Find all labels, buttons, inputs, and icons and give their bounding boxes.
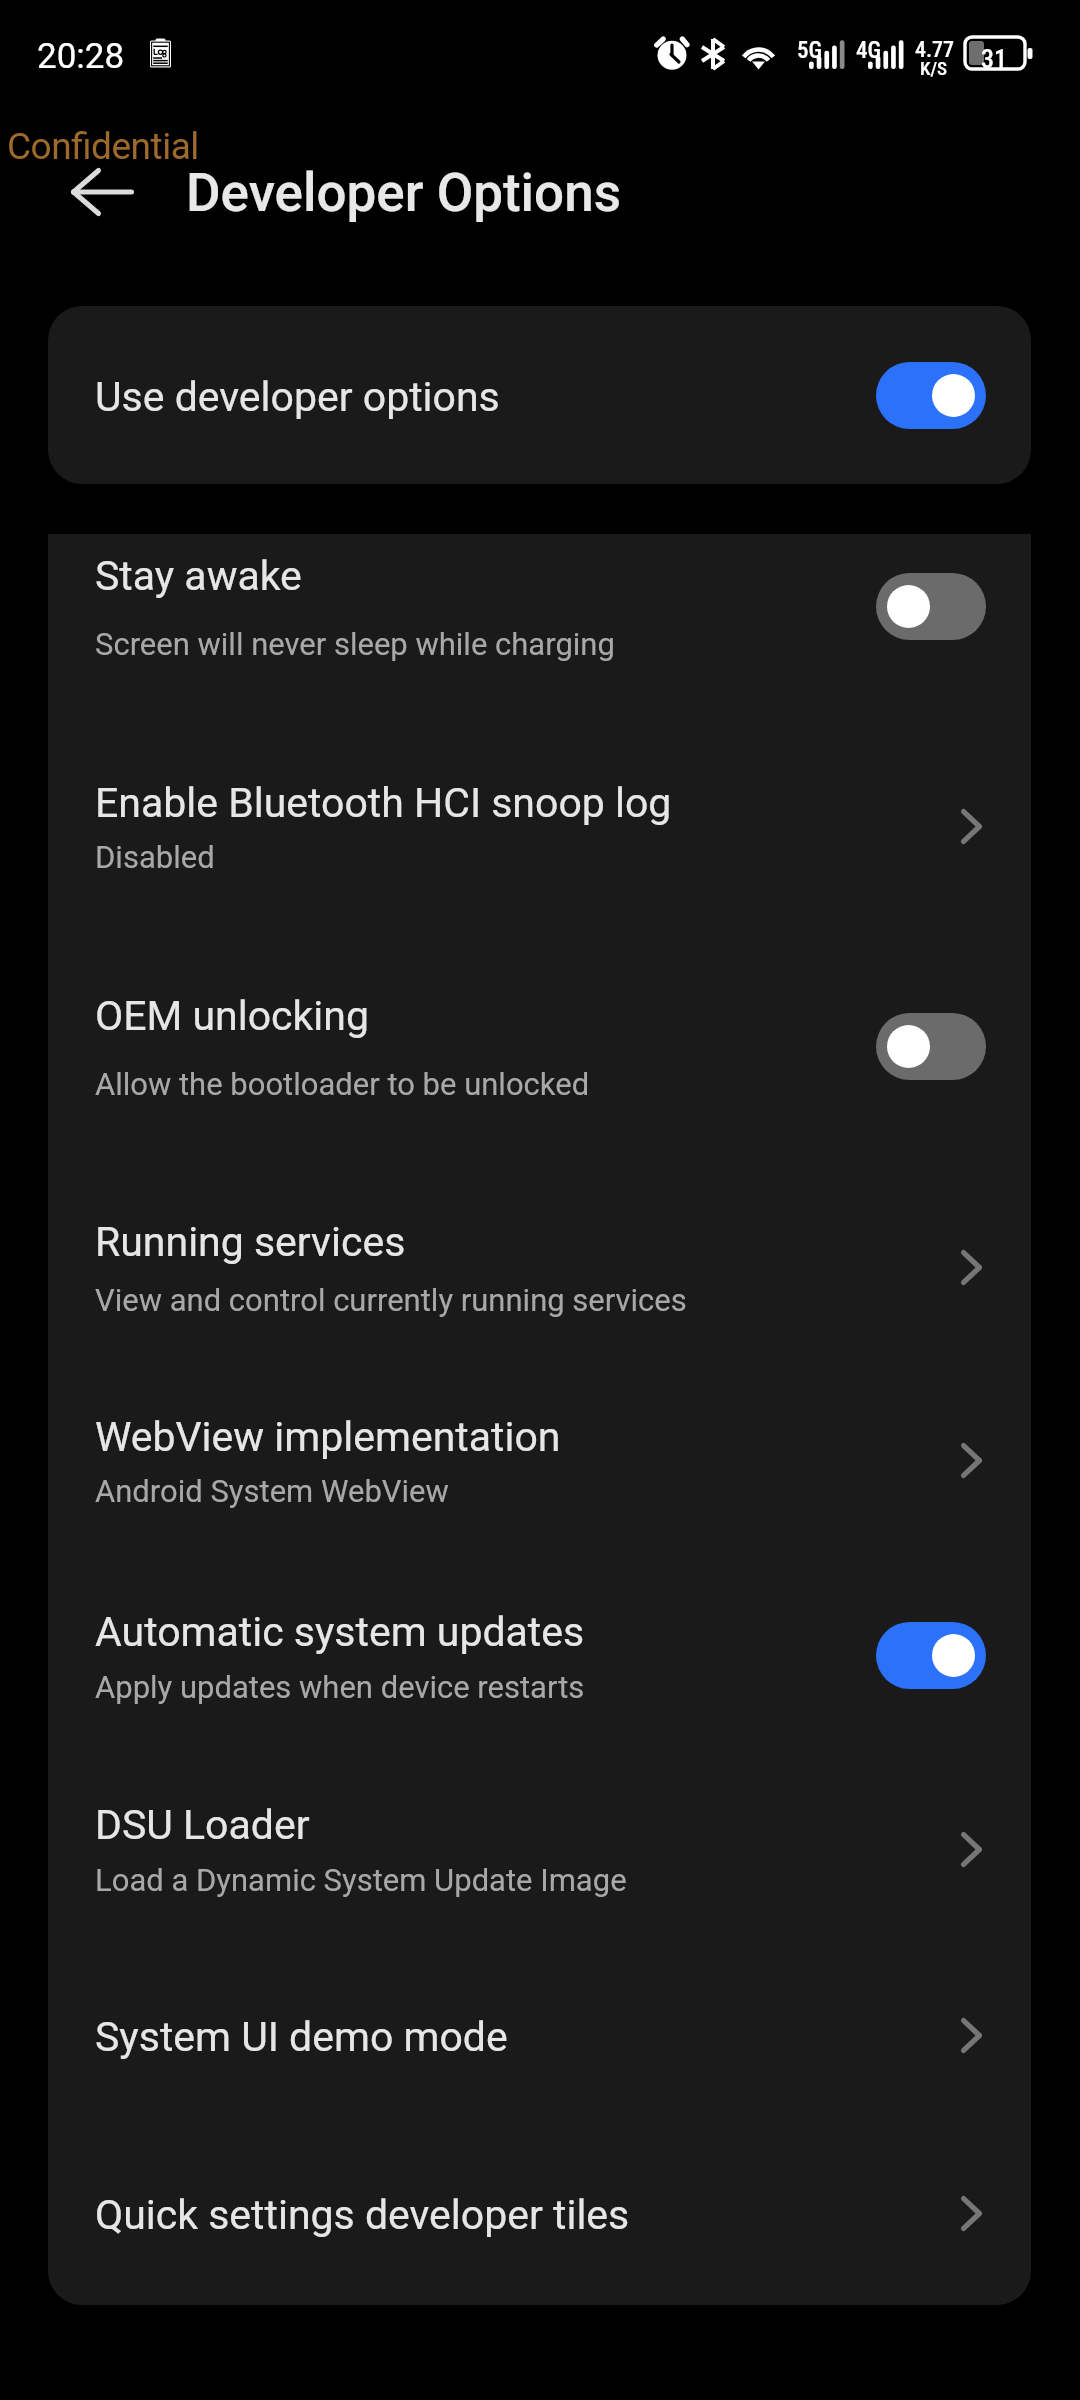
button[interactable]: Enable Bluetooth HCI snoop log	[48, 760, 1031, 975]
staticText: DSU Loader	[95, 1801, 310, 1849]
button[interactable]: Toggle on	[876, 1622, 986, 1689]
staticText: K/S	[920, 57, 948, 79]
button[interactable]: Open	[941, 2183, 1001, 2243]
button[interactable]: Quick settings developer tiles	[48, 2160, 1031, 2303]
button[interactable]: Automatic system updates	[48, 1590, 1031, 1780]
button[interactable]: DSU Loader	[48, 1780, 1031, 1990]
button[interactable]: Back	[54, 144, 150, 240]
staticText: Allow the bootloader to be unlocked	[95, 1066, 590, 1102]
staticText: Android System WebView	[95, 1473, 449, 1509]
button[interactable]: Toggle off	[876, 1013, 986, 1080]
staticText: 20:28	[37, 36, 125, 77]
staticText: Use developer options	[95, 373, 500, 421]
button[interactable]: Open	[941, 1237, 1001, 1297]
staticText: 4G	[856, 37, 882, 64]
staticText: Load a Dynamic System Update Image	[95, 1862, 627, 1898]
staticText: WebView implementation	[95, 1413, 561, 1461]
staticText: Confidential	[7, 125, 199, 168]
button[interactable]: Toggle on	[876, 362, 986, 429]
button[interactable]: WebView implementation	[48, 1395, 1031, 1590]
button[interactable]: Open	[941, 2005, 1001, 2065]
staticText: Developer Options	[186, 162, 621, 224]
button[interactable]: System UI demo mode	[48, 1990, 1031, 2160]
button[interactable]: Toggle off	[876, 573, 986, 640]
staticText: Quick settings developer tiles	[95, 2191, 630, 2239]
staticText: Enable Bluetooth HCI snoop log	[95, 779, 672, 827]
staticText: System UI demo mode	[95, 2013, 508, 2061]
button[interactable]: Stay awake	[48, 534, 1031, 760]
button[interactable]: OEM unlocking	[48, 975, 1031, 1195]
button[interactable]: Open	[941, 1819, 1001, 1879]
staticText: Automatic system updates	[95, 1608, 585, 1656]
staticText: OEM unlocking	[95, 992, 369, 1040]
staticText: Stay awake	[95, 552, 302, 600]
button[interactable]: Use developer options	[48, 306, 1031, 484]
staticText: 5G	[797, 37, 823, 64]
staticText: Screen will never sleep while charging	[95, 626, 615, 662]
staticText: 31	[981, 44, 1007, 74]
staticText: 4.77	[915, 37, 955, 63]
button[interactable]: Running services	[48, 1195, 1031, 1395]
staticText: View and control currently running servi…	[95, 1282, 687, 1318]
staticText: Running services	[95, 1218, 406, 1266]
button[interactable]: Open	[941, 796, 1001, 856]
button[interactable]: Open	[941, 1430, 1001, 1490]
staticText: Disabled	[95, 839, 215, 875]
staticText: Apply updates when device restarts	[95, 1669, 585, 1705]
